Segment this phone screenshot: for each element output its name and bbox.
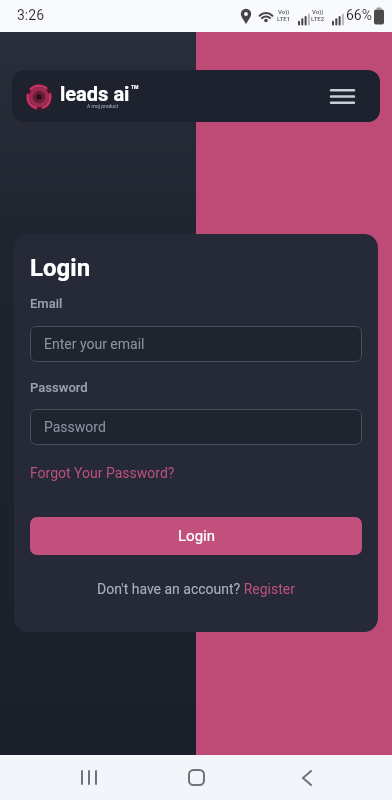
staticText: Login (178, 527, 215, 545)
button[interactable] (67, 755, 111, 800)
staticText: 66% (346, 7, 372, 23)
button[interactable]: Forgot Your Password? (30, 465, 175, 481)
staticText: Enter your email (44, 336, 145, 352)
button[interactable]: Enter your email (30, 326, 362, 362)
staticText: TM (131, 84, 139, 90)
staticText: Vo)) (278, 8, 290, 15)
button[interactable]: Login (30, 517, 362, 555)
staticText: Email (30, 296, 63, 311)
staticText: A moj product (87, 103, 119, 109)
staticText: Password (44, 419, 106, 435)
staticText: leads ai (60, 82, 130, 105)
button[interactable]: Don't have an account? Register (97, 581, 295, 597)
button[interactable] (322, 78, 362, 114)
button[interactable]: Password (30, 409, 362, 445)
button[interactable] (285, 755, 329, 800)
button[interactable] (174, 755, 218, 800)
staticText: Login (30, 254, 91, 282)
staticText: Password (30, 380, 88, 395)
staticText: LTE1 (277, 15, 291, 22)
staticText: Vo)) (312, 8, 324, 15)
staticText: 3:26 (17, 7, 44, 23)
staticText: LTE2 (311, 15, 325, 22)
